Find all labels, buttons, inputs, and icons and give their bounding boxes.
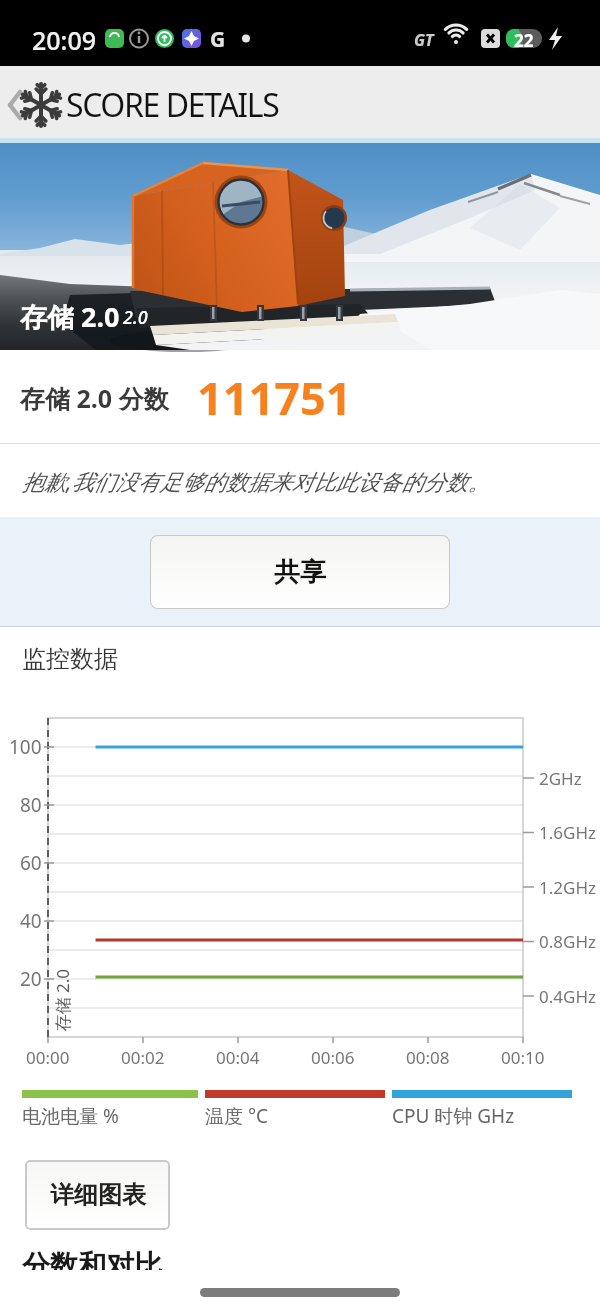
staticText: 电池电量 % — [22, 1103, 119, 1129]
staticText: 温度 °C — [205, 1103, 269, 1129]
staticText: SCORE DETAILS — [66, 83, 279, 127]
staticText: 监控数据 — [22, 644, 118, 674]
button[interactable]: 共享 — [150, 535, 450, 609]
button[interactable] — [200, 1288, 400, 1297]
staticText: G — [210, 25, 226, 54]
staticText: 详细图表 — [50, 1180, 146, 1210]
staticText: CPU 时钟 GHz — [392, 1103, 515, 1129]
staticText: 共享 — [274, 556, 326, 589]
button[interactable]: 详细图表 — [25, 1160, 170, 1230]
staticText: 2.0 — [123, 305, 148, 330]
staticText: 20:09 — [32, 23, 97, 57]
staticText: 存储 2.0 分数 — [20, 381, 169, 415]
staticText: 111751 — [197, 367, 352, 428]
staticText: GT — [414, 29, 434, 51]
staticText: 分数和对比 — [22, 1248, 162, 1283]
button[interactable]: SCORE DETAILS — [0, 66, 600, 138]
staticText: 存储 2.0 — [20, 298, 120, 335]
staticText: 抱歉,我们没有足够的数据来对比此设备的分数。 — [22, 466, 490, 496]
staticText: 22 — [514, 29, 534, 52]
